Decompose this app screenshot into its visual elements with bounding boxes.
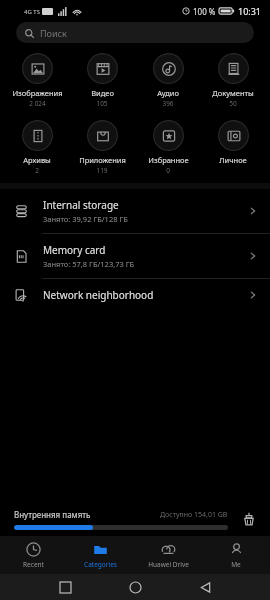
button[interactable]: Categories	[67, 536, 134, 574]
staticText: 2 024	[29, 99, 46, 108]
staticText: Categories	[84, 560, 117, 569]
staticText: Избранное	[148, 155, 189, 165]
staticText: Личное	[219, 155, 247, 165]
staticText: Internal storage	[43, 198, 119, 212]
staticText: 50	[229, 99, 237, 108]
button[interactable]: Видео	[70, 51, 134, 110]
button[interactable]: Документы	[201, 51, 265, 110]
staticText: 0	[166, 166, 170, 175]
button[interactable]: Recents	[30, 574, 100, 600]
staticText: Приложения	[79, 155, 126, 165]
staticText: 119	[96, 166, 108, 175]
button[interactable]: Приложения	[70, 118, 134, 177]
staticText: Доступно 154,01 GB	[160, 510, 228, 520]
staticText: 105	[96, 99, 108, 108]
staticText: Поиск	[40, 27, 67, 39]
button[interactable]: Архивы	[5, 118, 69, 177]
button[interactable]: Me	[202, 536, 270, 574]
staticText: Me	[231, 560, 241, 569]
button[interactable]: Huawei Drive	[134, 536, 202, 574]
staticText: Занято: 57,8 ГБ/123,73 ГБ	[43, 259, 135, 269]
button[interactable]: Back	[170, 574, 240, 600]
staticText: Recent	[23, 560, 44, 569]
staticText: Внутренняя память	[14, 509, 91, 520]
button[interactable]: Memory card	[0, 234, 270, 279]
staticText: Архивы	[23, 155, 51, 165]
staticText: Аудио	[157, 88, 179, 98]
staticText: Network neighborhood	[43, 288, 154, 302]
staticText: Документы	[212, 88, 254, 98]
staticText: Huawei Drive	[148, 560, 189, 569]
button[interactable]: Аудио	[136, 51, 200, 110]
staticText: 4G TS	[24, 8, 40, 16]
button[interactable]: Избранное	[136, 118, 200, 177]
staticText: 10:31	[238, 5, 262, 17]
staticText: Видео	[91, 88, 114, 98]
staticText: 100 %	[193, 6, 216, 17]
staticText: 2	[35, 166, 39, 175]
button[interactable]: Личное	[201, 118, 265, 167]
button[interactable]: Recent	[0, 536, 67, 574]
button[interactable]: Internal storage	[0, 189, 270, 234]
button[interactable]: Network neighborhood	[0, 279, 270, 311]
button[interactable]: Поиск	[16, 22, 254, 43]
staticText: Изображения	[12, 88, 63, 98]
button[interactable]: Home	[100, 574, 170, 600]
staticText: 396	[162, 99, 174, 108]
staticText: Memory card	[43, 243, 106, 257]
button[interactable]: Изображения	[5, 51, 69, 110]
button[interactable]: Clean up storage	[238, 508, 260, 530]
staticText: Занято: 39,92 ГБ/128 ГБ	[43, 214, 128, 224]
